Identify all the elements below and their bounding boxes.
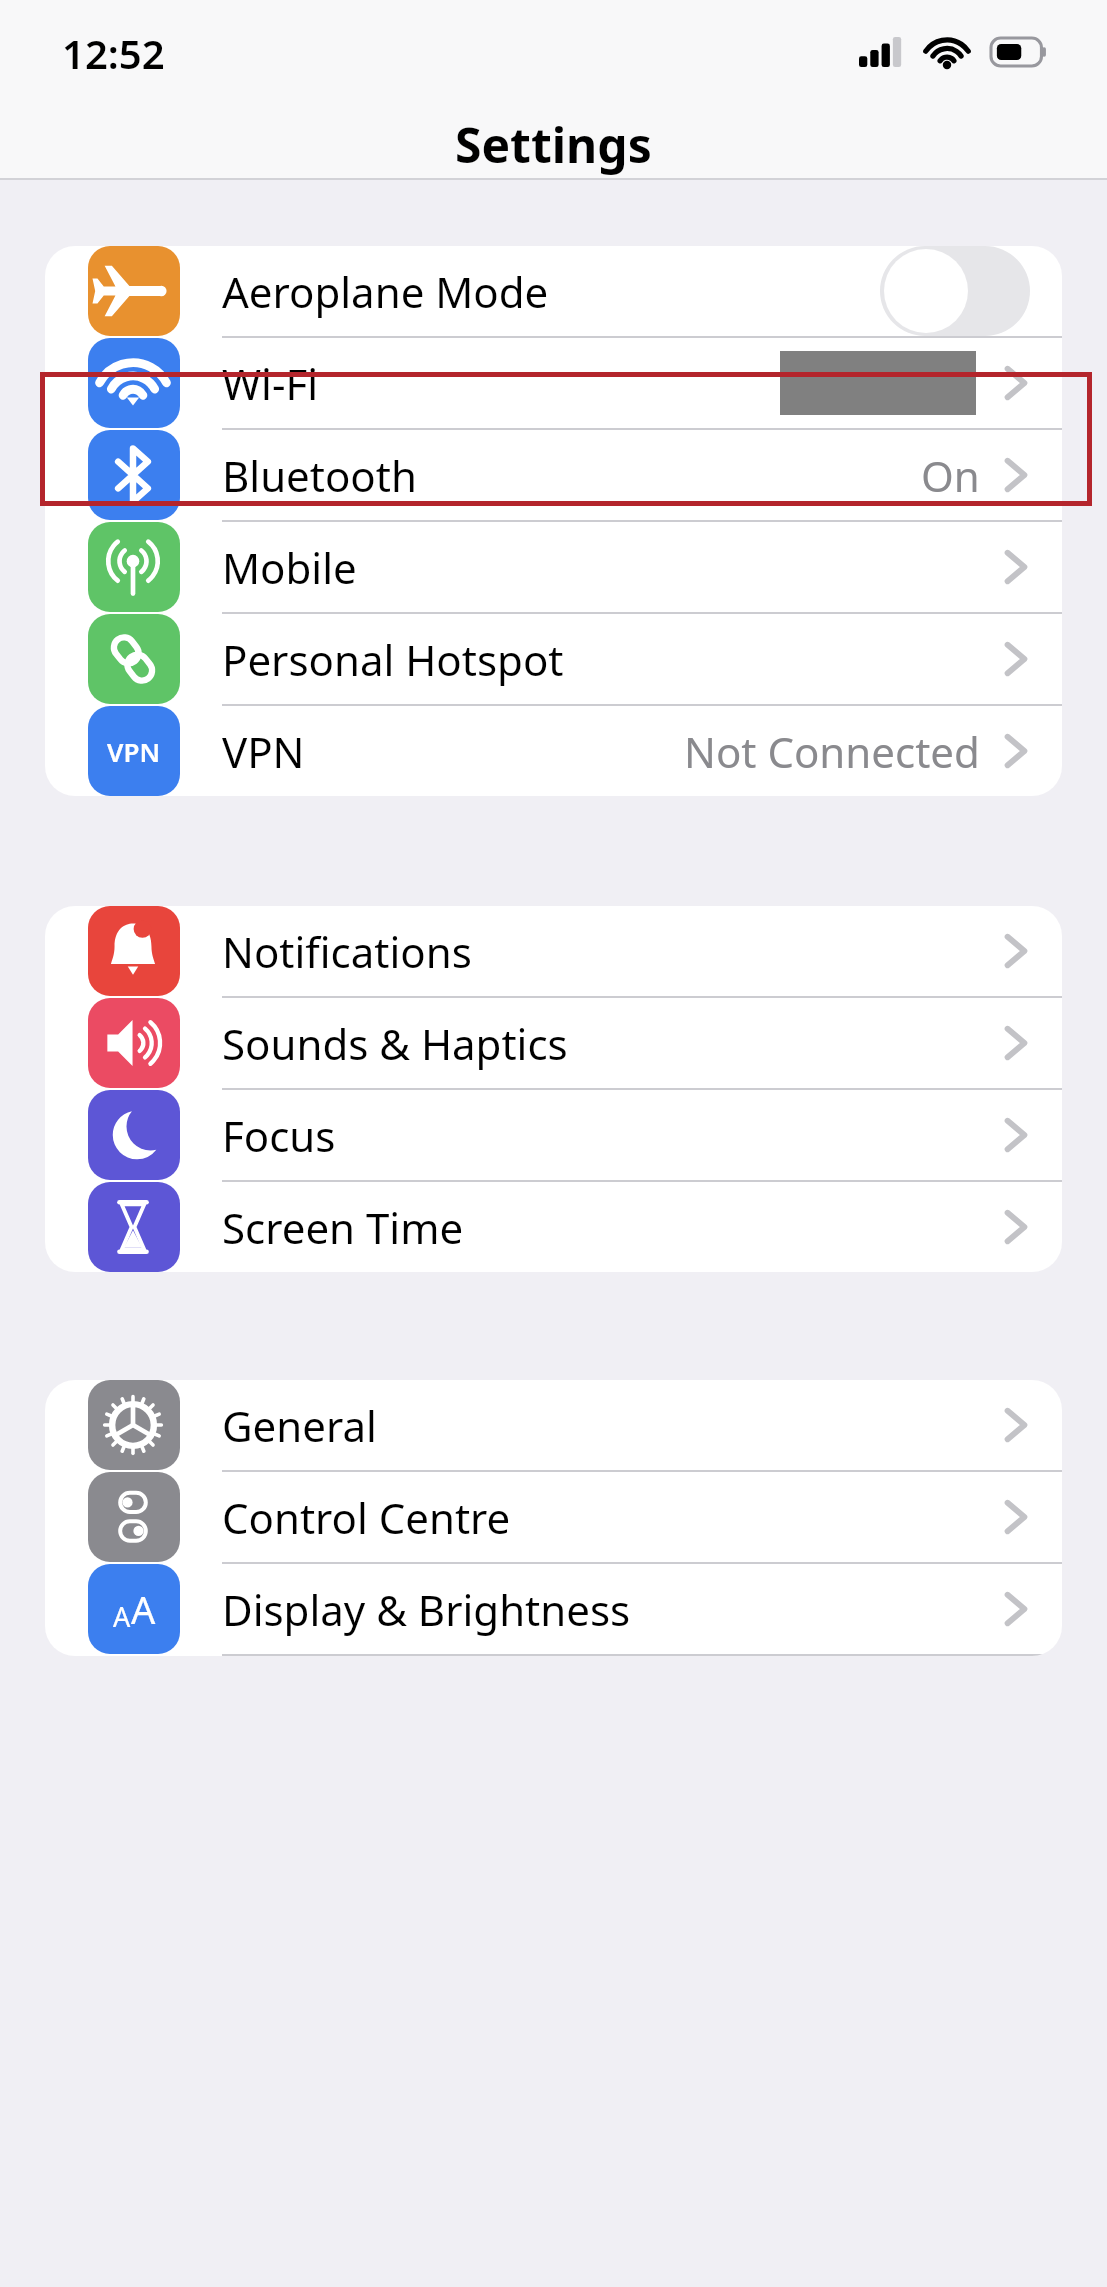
staticText: VPN [222,723,305,780]
button[interactable]: Notifications [45,906,1062,996]
button[interactable]: Wi-Fi [45,338,1062,428]
button[interactable]: Mobile [45,522,1062,612]
staticText: Focus [222,1107,336,1164]
staticText: Wi-Fi [222,355,319,412]
button[interactable]: Screen Time [45,1182,1062,1272]
button[interactable]: Aeroplane Mode [45,246,1062,336]
staticText: Personal Hotspot [222,631,564,688]
staticText: A [113,1598,131,1635]
staticText: A [131,1583,156,1635]
button[interactable]: A [45,1564,1062,1654]
button[interactable]: General [45,1380,1062,1470]
button[interactable]: Personal Hotspot [45,614,1062,704]
staticText: Bluetooth [222,447,417,504]
staticText: VPN [107,734,161,769]
staticText: Not Connected [684,723,980,780]
button[interactable]: Control Centre [45,1472,1062,1562]
staticText: Sounds & Haptics [222,1015,568,1072]
button[interactable]: VPN [45,706,1062,796]
staticText: Mobile [222,539,357,596]
button[interactable]: Bluetooth [45,430,1062,520]
staticText: Notifications [222,923,472,980]
staticText: 12:52 [62,26,165,78]
staticText: Control Centre [222,1489,511,1546]
staticText: Aeroplane Mode [222,263,549,320]
staticText: On [921,447,980,504]
staticText: Display & Brightness [222,1581,631,1638]
staticText: General [222,1397,377,1454]
staticText: Screen Time [222,1199,464,1256]
button[interactable]: Sounds & Haptics [45,998,1062,1088]
button[interactable]: Focus [45,1090,1062,1180]
staticText: Settings [455,112,652,177]
button[interactable]: Aeroplane Mode, off [880,246,1030,336]
